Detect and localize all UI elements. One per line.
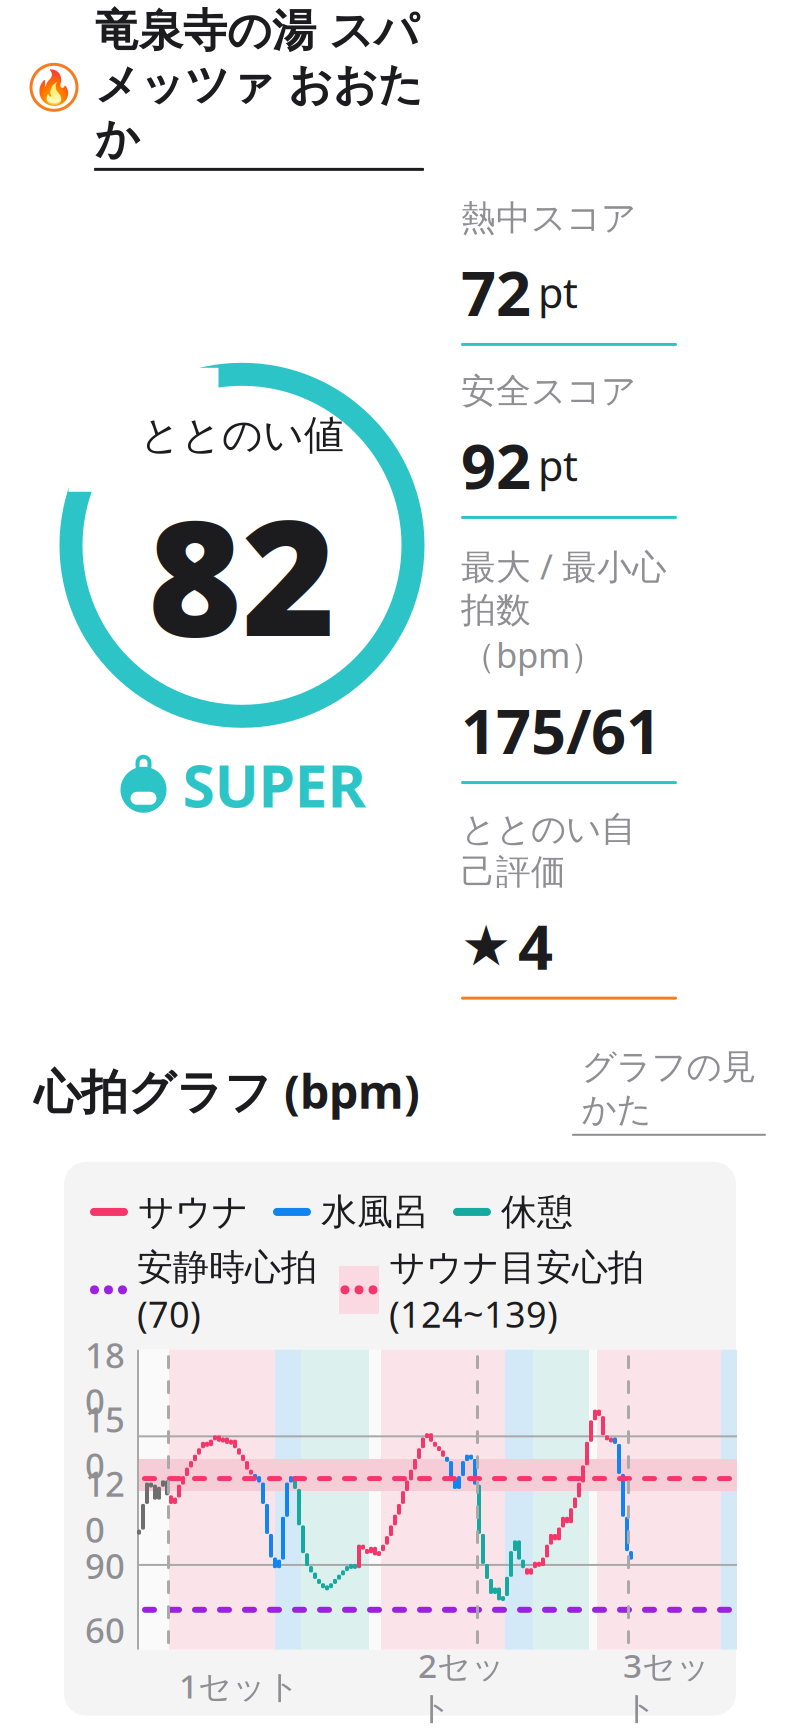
- staticText: 水風呂: [321, 1190, 429, 1234]
- staticText: 休憩: [501, 1190, 573, 1234]
- staticText: 竜泉寺の湯 スパメッツァ おおたか: [95, 4, 423, 166]
- staticText: 安静時心拍 (70): [137, 1242, 317, 1338]
- button[interactable]: 🔥: [0, 0, 800, 171]
- staticText: 3セット: [623, 1643, 710, 1728]
- staticText: ととのい値: [140, 410, 344, 460]
- staticText: pt: [538, 265, 578, 320]
- staticText: 175/61: [461, 690, 661, 771]
- staticText: 2セット: [418, 1643, 505, 1728]
- staticText: 150: [85, 1396, 125, 1488]
- staticText: グラフの見かた: [581, 1046, 756, 1131]
- staticText: 最大 / 最小心拍数（bpm）: [461, 543, 667, 678]
- staticText: SUPER: [182, 746, 365, 824]
- staticText: 120: [85, 1460, 125, 1552]
- staticText: 🔥: [33, 68, 75, 106]
- staticText: 82: [148, 468, 336, 680]
- staticText: ★: [461, 914, 511, 978]
- staticText: 90: [85, 1542, 125, 1588]
- staticText: 安全スコア: [461, 370, 636, 412]
- staticText: 180: [85, 1332, 125, 1424]
- staticText: 1セット: [179, 1663, 300, 1708]
- staticText: 92: [461, 424, 531, 506]
- staticText: 心拍グラフ (bpm): [34, 1060, 420, 1122]
- staticText: 熱中スコア: [461, 197, 636, 239]
- staticText: pt: [538, 438, 578, 493]
- button[interactable]: グラフの見かた: [572, 1046, 766, 1136]
- staticText: 60: [85, 1607, 125, 1653]
- staticText: ととのい自己評価: [461, 808, 636, 893]
- staticText: 72: [461, 251, 531, 333]
- staticText: サウナ: [138, 1190, 249, 1234]
- staticText: 4: [518, 905, 553, 987]
- staticText: サウナ目安心拍 (124~139): [389, 1242, 644, 1338]
